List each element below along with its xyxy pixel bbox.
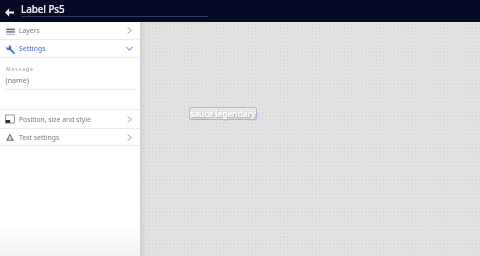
staticText: {name}	[5, 75, 30, 85]
button[interactable]: Position, size and style	[0, 110, 140, 128]
button[interactable]: Back	[1, 4, 17, 20]
staticText: Position, size and style	[19, 115, 91, 124]
staticText: sauce legendary	[190, 108, 256, 120]
staticText: Layers	[19, 26, 40, 35]
staticText: Label Ps5	[21, 3, 65, 16]
button[interactable]: Layers	[0, 22, 140, 39]
staticText: Text settings	[19, 133, 60, 142]
button[interactable]: Text settings	[0, 129, 140, 145]
button[interactable]: Settings	[0, 40, 140, 57]
staticText: Settings	[19, 44, 46, 53]
button[interactable]: sauce legendary	[189, 107, 257, 120]
staticText: Message	[6, 66, 34, 73]
